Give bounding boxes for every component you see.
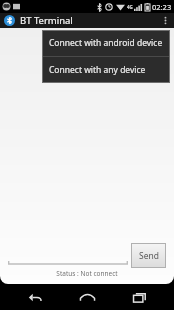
staticText: Status : Not connect xyxy=(56,269,118,278)
button[interactable]: Home xyxy=(70,284,104,310)
staticText: Connect with android device xyxy=(49,37,163,49)
staticText: 02:23 xyxy=(152,2,172,12)
staticText: 4G xyxy=(127,4,133,10)
button[interactable]: Connect with android device xyxy=(42,30,170,56)
button[interactable]: Recent apps xyxy=(122,284,156,310)
staticText: BT Terminal xyxy=(20,14,73,27)
staticText: Connect with any device xyxy=(49,64,146,76)
button[interactable]: Back xyxy=(18,284,52,310)
button[interactable]: Send xyxy=(131,243,166,268)
staticText: Send xyxy=(139,250,159,262)
button[interactable]: Connect with any device xyxy=(42,57,170,83)
button[interactable] xyxy=(8,255,128,265)
button[interactable]: More options xyxy=(159,13,171,28)
